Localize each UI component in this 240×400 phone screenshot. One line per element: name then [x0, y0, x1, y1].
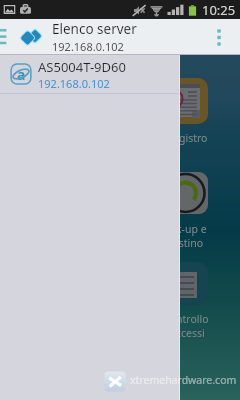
staticText: gistro [179, 131, 208, 145]
staticText: AS5004T-9D60 [38, 58, 126, 76]
staticText: k-up e [176, 222, 207, 236]
button[interactable]: More options [208, 22, 230, 52]
staticText: 192.168.0.102 [38, 76, 110, 91]
staticText: ccessi [176, 326, 205, 340]
staticText: ntrollo [176, 312, 209, 326]
button[interactable]: Open navigation drawer [0, 24, 14, 50]
button[interactable]: a [0, 55, 179, 93]
staticText: istino [176, 236, 204, 250]
staticText: 192.168.0.102 [52, 39, 124, 54]
staticText: 10:25 [202, 1, 236, 19]
staticText: xtremehardware.com [130, 373, 237, 387]
staticText: a [17, 65, 26, 84]
staticText: Elenco server [52, 20, 137, 38]
